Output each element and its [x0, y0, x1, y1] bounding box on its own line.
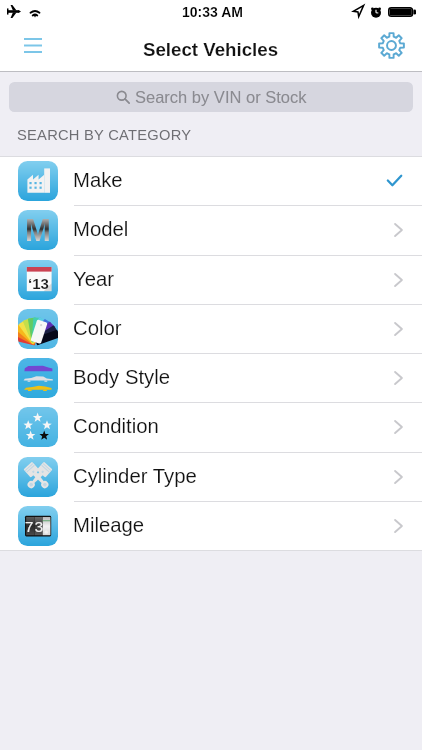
staticText: Select Vehicles: [143, 39, 279, 60]
staticText: Condition: [73, 415, 159, 438]
button[interactable]: 73: [0, 501, 422, 550]
button[interactable]: Body Style: [0, 353, 422, 402]
button[interactable]: ‘13: [0, 255, 422, 304]
staticText: 73: [25, 518, 45, 535]
staticText: Make: [73, 169, 123, 192]
button[interactable]: Make: [0, 156, 422, 205]
staticText: Mileage: [73, 514, 145, 537]
staticText: 10:33 AM: [182, 4, 243, 20]
staticText: Model: [73, 218, 129, 241]
button[interactable]: Cylinder Type: [0, 452, 422, 501]
staticText: Cylinder Type: [73, 465, 197, 488]
staticText: M: [25, 213, 51, 248]
button[interactable]: M: [0, 205, 422, 254]
staticText: Body Style: [73, 366, 171, 389]
staticText: Search by VIN or Stock: [135, 88, 307, 106]
button[interactable]: Settings: [364, 25, 422, 71]
staticText: Year: [73, 268, 115, 291]
button[interactable]: Menu: [4, 25, 62, 71]
staticText: Color: [73, 317, 122, 340]
button[interactable]: Condition: [0, 402, 422, 451]
staticText: ‘13: [28, 275, 49, 292]
button[interactable]: Color: [0, 304, 422, 353]
button[interactable]: Search by VIN or Stock: [9, 82, 413, 112]
staticText: SEARCH BY CATEGORY: [17, 127, 192, 143]
